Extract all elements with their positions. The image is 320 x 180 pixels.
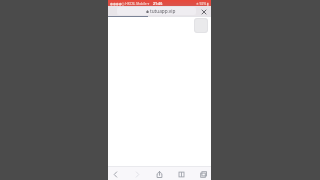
staticText: tutuapp.vip bbox=[150, 8, 176, 14]
staticText: 21:46 bbox=[153, 1, 163, 6]
button[interactable]: Close bbox=[200, 8, 207, 15]
button[interactable]: Address field bbox=[117, 7, 196, 15]
button[interactable]: Bookmarks bbox=[176, 167, 187, 180]
staticText: ✶ 92% ▮ bbox=[196, 1, 209, 5]
button[interactable]: Tabs bbox=[198, 167, 209, 180]
button[interactable]: Floating button bbox=[194, 18, 208, 33]
button[interactable]: Share bbox=[154, 167, 165, 180]
button[interactable]: Back bbox=[110, 167, 121, 180]
button[interactable]: Forward bbox=[132, 167, 143, 180]
staticText: ●●●●○ HKCSL Mobile ▾ bbox=[110, 1, 150, 5]
